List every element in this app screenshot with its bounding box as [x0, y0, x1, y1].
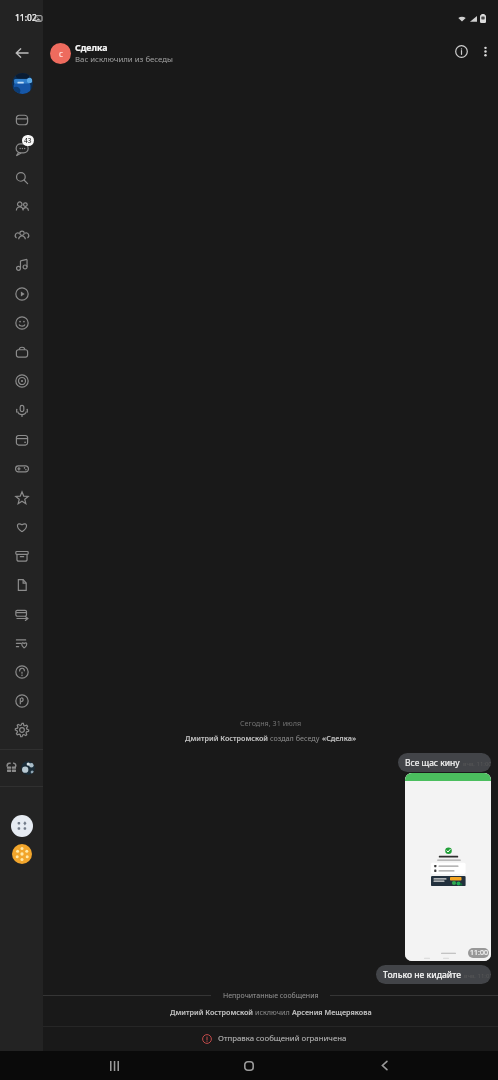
button[interactable]: Groups: [10, 224, 34, 248]
staticText: Отправка сообщений ограничена: [218, 1033, 347, 1044]
staticText: исключил: [255, 1007, 292, 1017]
staticText: Непрочитанные сообщения: [223, 991, 319, 1001]
button[interactable]: Parking: [10, 689, 34, 713]
button[interactable]: Info: [448, 38, 474, 64]
button[interactable]: Podcasts: [10, 399, 34, 423]
staticText: 11:00: [470, 948, 488, 958]
button[interactable]: Только не кидайте: [376, 965, 491, 984]
button[interactable]: Back: [11, 42, 33, 64]
staticText: 43: [24, 136, 32, 145]
button[interactable]: Все щас кину: [398, 753, 491, 772]
staticText: Вас исключили из беседы: [75, 54, 173, 65]
staticText: 11:02: [15, 12, 37, 24]
staticText: создал беседу: [270, 733, 322, 743]
button[interactable]: Docs: [10, 573, 34, 597]
staticText: Арсения Мещерякова: [292, 1007, 372, 1017]
button[interactable]: Help: [10, 660, 34, 684]
button[interactable]: Apps: [5, 761, 18, 774]
button[interactable]: Archive: [10, 544, 34, 568]
staticText: «Сделка»: [322, 733, 357, 743]
button[interactable]: Transfers: [10, 602, 34, 626]
button[interactable]: Calendar: [10, 428, 34, 452]
button[interactable]: Feed: [10, 631, 34, 655]
button[interactable]: Video: [10, 282, 34, 306]
button[interactable]: Profile: [12, 73, 33, 94]
button[interactable]: Assistant: [12, 844, 32, 864]
staticText: Дмитрий Костромской: [185, 733, 270, 743]
button[interactable]: Likes: [10, 515, 34, 539]
button[interactable]: Stickers: [10, 311, 34, 335]
button[interactable]: Language: [21, 761, 35, 775]
staticText: с: [59, 48, 63, 59]
button[interactable]: Photo attachment: [405, 773, 491, 961]
staticText: Только не кидайте: [383, 969, 461, 981]
button[interactable]: Music: [10, 253, 34, 277]
button[interactable]: Ads: [10, 369, 34, 393]
button[interactable]: Chat avatar: [50, 43, 71, 64]
staticText: Сегодня, 31 июля: [240, 718, 302, 728]
button[interactable]: Search: [10, 166, 34, 190]
button[interactable]: Messages: [10, 137, 34, 161]
button[interactable]: Friends: [10, 195, 34, 219]
button[interactable]: Back: [374, 1051, 394, 1080]
staticText: Сделка: [75, 42, 108, 54]
button[interactable]: Market: [10, 340, 34, 364]
staticText: Все щас кину: [405, 757, 460, 769]
button[interactable]: Bookmarks: [10, 486, 34, 510]
button[interactable]: Settings: [10, 718, 34, 742]
button[interactable]: Games: [10, 457, 34, 481]
button[interactable]: Recents: [104, 1051, 124, 1080]
button[interactable]: Home: [239, 1051, 259, 1080]
button[interactable]: More options: [476, 42, 494, 60]
button[interactable]: Mini apps: [11, 815, 33, 837]
staticText: Дмитрий Костромской: [170, 1007, 255, 1017]
staticText: вчв, 11:01: [464, 972, 491, 980]
staticText: вчв, 11:00: [463, 760, 491, 768]
button[interactable]: Wallet: [10, 108, 34, 132]
